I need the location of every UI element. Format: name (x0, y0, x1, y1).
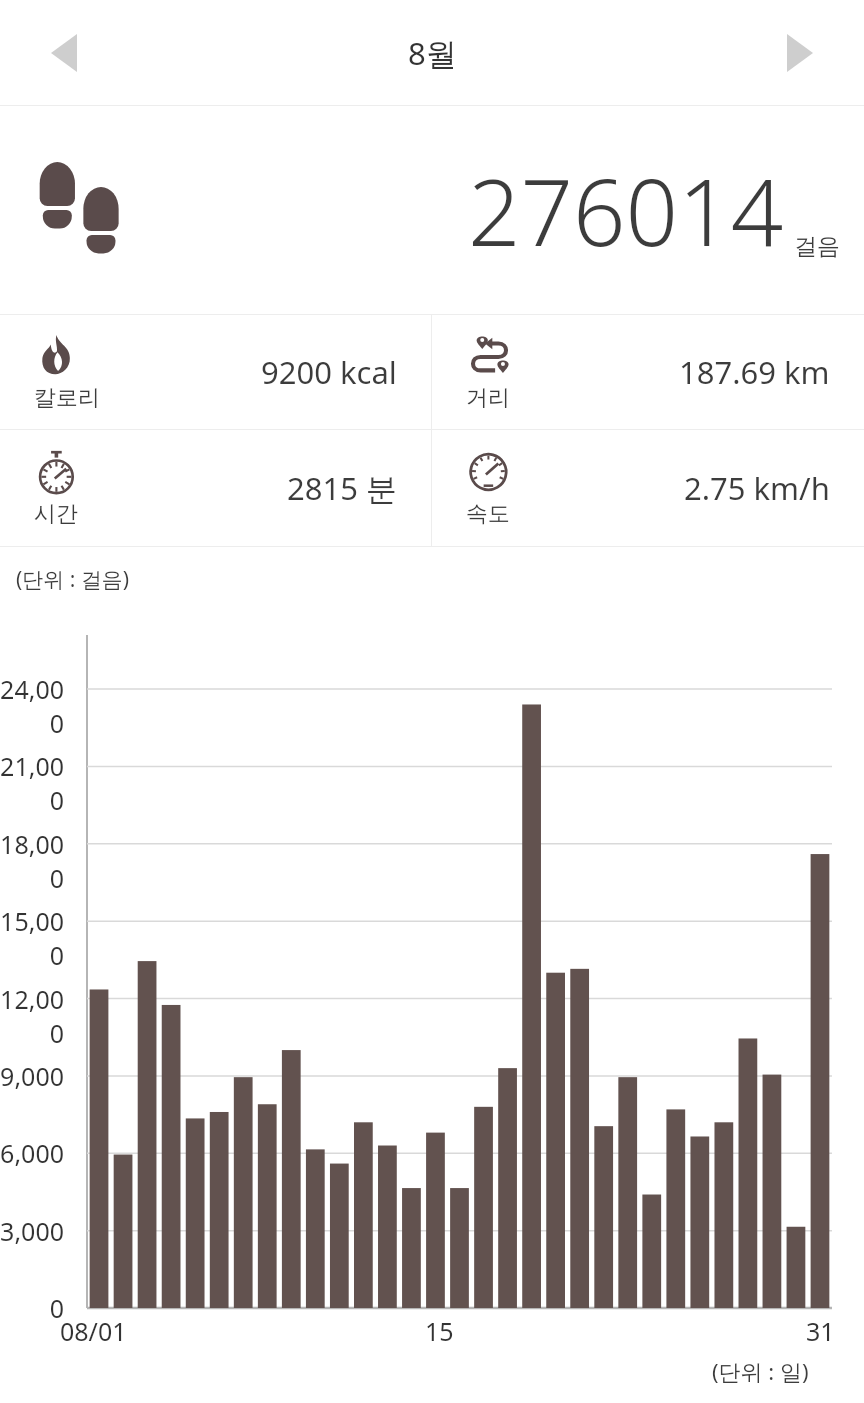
button[interactable]: Previous month (28, 17, 100, 89)
button[interactable]: 시간 (0, 430, 431, 546)
staticText: 6,000 (0, 1136, 64, 1170)
staticText: (단위 : 걸음) (16, 565, 130, 594)
staticText: 걸음 (794, 232, 840, 261)
staticText: 9200 kcal (261, 351, 397, 393)
staticText: 9,000 (0, 1059, 64, 1093)
staticText: 12,000 (0, 982, 64, 1050)
staticText: 칼로리 (34, 384, 100, 412)
button[interactable]: 칼로리 (0, 315, 431, 429)
button[interactable]: 거리 (432, 315, 864, 429)
staticText: 시간 (34, 500, 78, 528)
staticText: 3,000 (0, 1214, 64, 1248)
staticText: 21,000 (0, 749, 64, 817)
button[interactable]: 속도 (432, 430, 864, 546)
button[interactable]: 276014 (0, 106, 864, 314)
staticText: 15,000 (0, 904, 64, 972)
staticText: 0 (0, 1291, 64, 1325)
staticText: 187.69 km (679, 351, 830, 393)
staticText: 31 (806, 1314, 835, 1348)
staticText: 8월 (408, 32, 457, 74)
staticText: 2.75 km/h (684, 467, 830, 509)
staticText: 거리 (466, 384, 510, 412)
staticText: (단위 : 일) (712, 1356, 809, 1386)
staticText: 24,000 (0, 672, 64, 740)
staticText: 속도 (466, 500, 510, 528)
staticText: 276014 (468, 148, 784, 273)
staticText: 18,000 (0, 827, 64, 895)
button[interactable]: Next month (764, 17, 836, 89)
staticText: 15 (425, 1314, 454, 1348)
staticText: 2815 분 (287, 467, 397, 509)
staticText: 08/01 (60, 1314, 127, 1348)
